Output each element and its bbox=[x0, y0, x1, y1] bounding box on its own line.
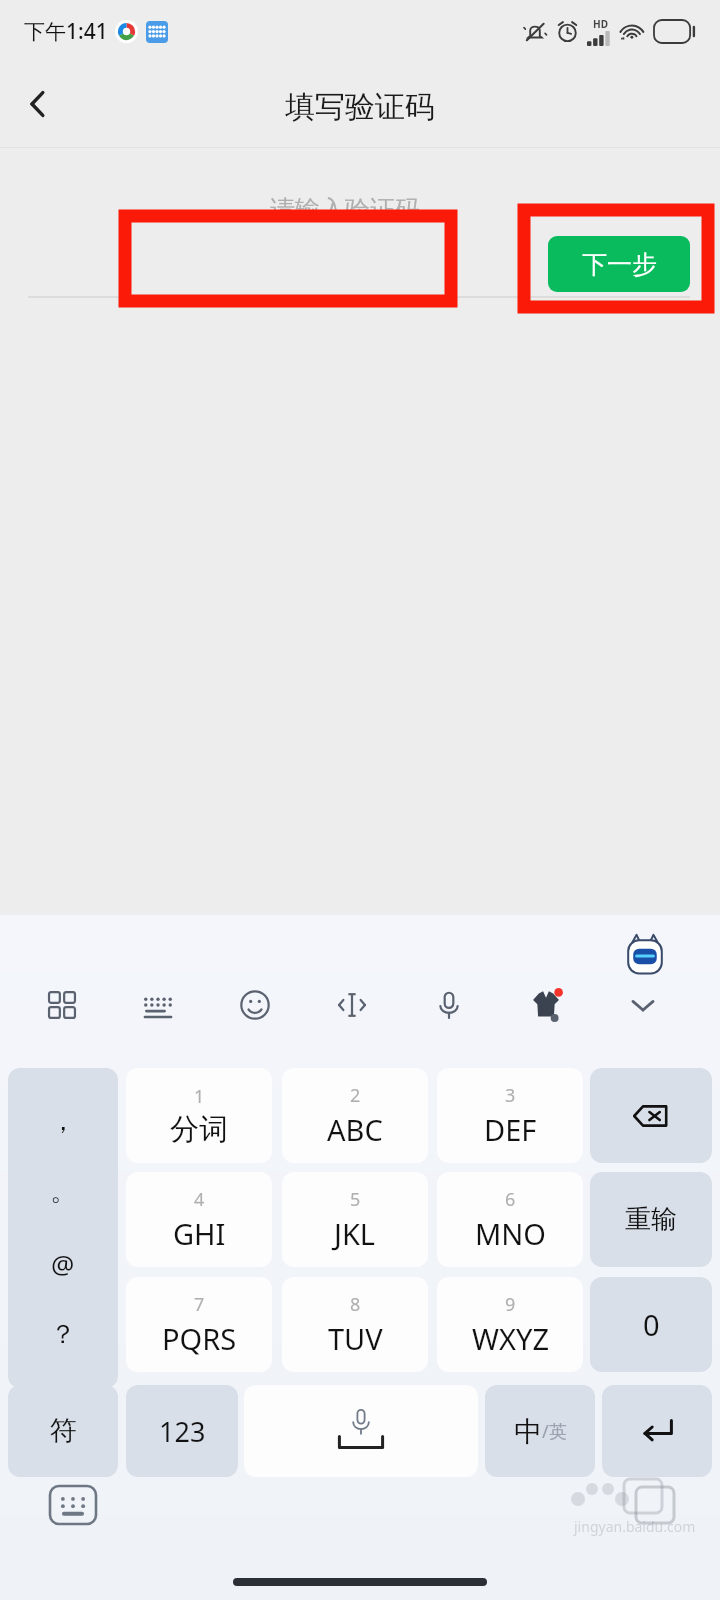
button[interactable]: 重输 bbox=[590, 1172, 712, 1267]
staticText: 请输入验证码 bbox=[270, 194, 420, 225]
staticText: 填写验证码 bbox=[285, 88, 435, 126]
staticText: 下一步 bbox=[582, 249, 657, 280]
button[interactable]: 验证码输入框 bbox=[30, 233, 500, 295]
staticText: MNO bbox=[475, 1214, 546, 1253]
button[interactable]: 6 bbox=[437, 1172, 583, 1267]
staticText: 分词 bbox=[170, 1111, 228, 1148]
button[interactable]: 回车 bbox=[602, 1385, 712, 1477]
button[interactable]: 0 bbox=[590, 1277, 712, 1372]
button[interactable]: 收起键盘 bbox=[621, 983, 665, 1027]
staticText: 。 bbox=[50, 1175, 76, 1208]
staticText: 中 bbox=[514, 1414, 542, 1449]
button[interactable]: 3 bbox=[437, 1068, 583, 1163]
staticText: 1 bbox=[194, 1084, 205, 1109]
staticText: /英 bbox=[542, 1419, 567, 1444]
button[interactable]: 下一步 bbox=[548, 236, 690, 292]
staticText: 符 bbox=[50, 1414, 77, 1448]
button[interactable]: 9 bbox=[437, 1277, 583, 1372]
button[interactable]: 删除 bbox=[590, 1068, 712, 1163]
staticText: ABC bbox=[327, 1110, 383, 1149]
button[interactable]: 123 bbox=[126, 1385, 238, 1477]
staticText: 下午1:41 bbox=[24, 17, 108, 46]
staticText: 重输 bbox=[625, 1203, 677, 1236]
button[interactable]: ， bbox=[8, 1068, 118, 1388]
staticText: PQRS bbox=[162, 1319, 237, 1358]
button[interactable]: 5 bbox=[282, 1172, 428, 1267]
staticText: WXYZ bbox=[472, 1319, 549, 1358]
staticText: 5 bbox=[350, 1187, 361, 1212]
button[interactable]: 切换键盘 bbox=[44, 1480, 102, 1530]
staticText: jingyan.baidu.com bbox=[574, 1517, 696, 1536]
button[interactable]: 快捷面板 bbox=[40, 983, 84, 1027]
button[interactable]: 中 bbox=[485, 1385, 595, 1477]
staticText: 4 bbox=[194, 1187, 205, 1212]
staticText: 123 bbox=[159, 1413, 206, 1450]
button[interactable]: 1 bbox=[126, 1068, 272, 1163]
button[interactable]: 7 bbox=[126, 1277, 272, 1372]
button[interactable]: 返回 bbox=[8, 74, 68, 134]
staticText: 7 bbox=[194, 1292, 205, 1317]
button[interactable]: 2 bbox=[282, 1068, 428, 1163]
button[interactable]: 8 bbox=[282, 1277, 428, 1372]
staticText: 3 bbox=[505, 1083, 516, 1108]
button[interactable]: 语音输入 bbox=[427, 983, 471, 1027]
staticText: 8 bbox=[350, 1292, 361, 1317]
staticText: @ bbox=[51, 1246, 75, 1281]
staticText: TUV bbox=[328, 1319, 383, 1358]
button[interactable]: 符 bbox=[8, 1385, 118, 1477]
button[interactable]: 键盘布局 bbox=[136, 983, 180, 1027]
button[interactable]: 皮肤 bbox=[524, 983, 568, 1027]
staticText: 6 bbox=[505, 1187, 516, 1212]
staticText: DEF bbox=[484, 1110, 537, 1149]
button[interactable]: 表情 bbox=[233, 983, 277, 1027]
staticText: 9 bbox=[505, 1292, 516, 1317]
button[interactable]: 编辑 bbox=[330, 983, 374, 1027]
staticText: ？ bbox=[50, 1318, 76, 1351]
staticText: 2 bbox=[350, 1083, 361, 1108]
staticText: GHI bbox=[173, 1214, 226, 1253]
staticText: 0 bbox=[643, 1305, 660, 1344]
staticText: HD bbox=[593, 17, 608, 31]
button[interactable]: 输入法助手 bbox=[624, 933, 666, 979]
staticText: ， bbox=[50, 1105, 76, 1138]
button[interactable]: 4 bbox=[126, 1172, 272, 1267]
button[interactable]: 空格 bbox=[244, 1385, 478, 1477]
staticText: JKL bbox=[334, 1214, 376, 1253]
